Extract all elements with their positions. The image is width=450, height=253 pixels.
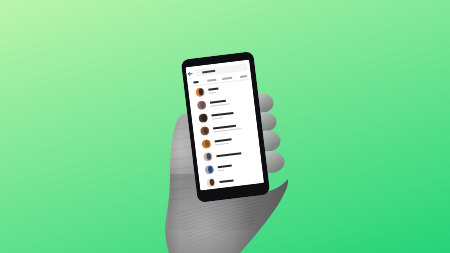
button[interactable]	[235, 73, 251, 80]
button[interactable]	[201, 131, 257, 151]
button[interactable]	[203, 76, 220, 84]
button[interactable]	[198, 106, 254, 125]
button[interactable]	[196, 93, 253, 112]
button[interactable]	[195, 80, 251, 99]
button[interactable]	[219, 74, 235, 82]
button[interactable]	[195, 63, 248, 77]
button[interactable]	[203, 144, 259, 164]
button[interactable]	[206, 170, 262, 190]
button[interactable]	[187, 78, 204, 86]
button[interactable]	[200, 118, 256, 138]
button[interactable]	[204, 157, 260, 177]
button[interactable]	[187, 70, 194, 77]
